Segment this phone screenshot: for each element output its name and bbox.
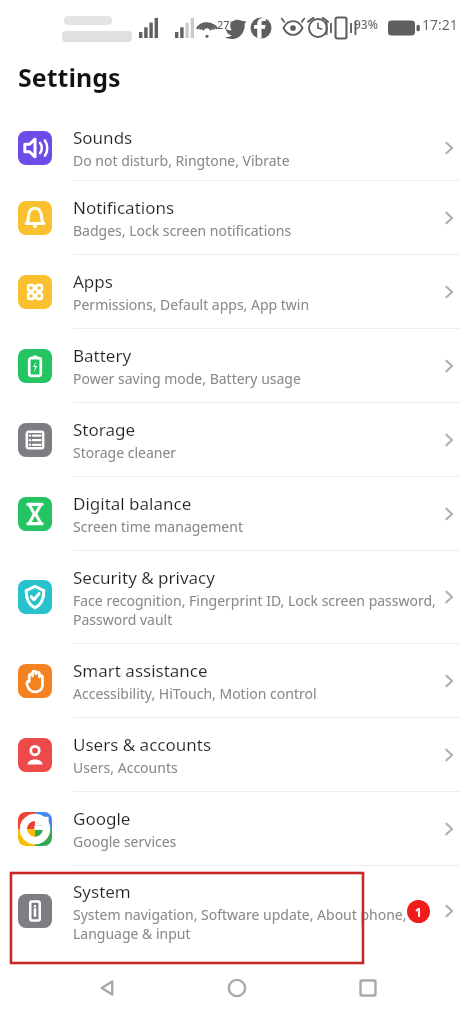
staticText: Do not disturb, Ringtone, Vibrate bbox=[73, 151, 290, 170]
staticText: 27° bbox=[217, 17, 235, 32]
staticText: Storage cleaner bbox=[73, 443, 177, 462]
button[interactable]: Digital balance bbox=[0, 477, 474, 550]
staticText: Screen time management bbox=[73, 517, 243, 536]
button[interactable]: Home bbox=[213, 964, 261, 1012]
staticText: Users & accounts bbox=[73, 733, 212, 756]
staticText: System navigation, Software update, Abou… bbox=[73, 905, 407, 943]
button[interactable]: Apps bbox=[0, 255, 474, 328]
button[interactable]: Users & accounts bbox=[0, 718, 474, 791]
staticText: Settings bbox=[18, 60, 121, 94]
button[interactable]: Recents bbox=[344, 964, 392, 1012]
button[interactable]: Google bbox=[0, 792, 474, 865]
staticText: 93% bbox=[354, 16, 378, 32]
staticText: Notifications bbox=[73, 196, 175, 219]
staticText: System bbox=[73, 880, 131, 903]
button[interactable]: Notifications bbox=[0, 181, 474, 254]
staticText: Google bbox=[73, 807, 131, 830]
button[interactable]: Smart assistance bbox=[0, 644, 474, 717]
staticText: Accessibility, HiTouch, Motion control bbox=[73, 684, 317, 703]
staticText: Battery bbox=[73, 344, 132, 367]
button[interactable]: Battery bbox=[0, 329, 474, 402]
staticText: Digital balance bbox=[73, 492, 192, 515]
staticText: 17:21 bbox=[422, 15, 458, 34]
staticText: 1 bbox=[415, 904, 422, 920]
button[interactable]: System bbox=[0, 866, 474, 956]
staticText: Apps bbox=[73, 270, 113, 293]
button[interactable]: Security & privacy bbox=[0, 551, 474, 643]
staticText: Sounds bbox=[73, 126, 133, 149]
button[interactable]: Sounds bbox=[0, 116, 474, 180]
staticText: Users, Accounts bbox=[73, 758, 178, 777]
staticText: Smart assistance bbox=[73, 659, 208, 682]
staticText: Face recognition, Fingerprint ID, Lock s… bbox=[73, 591, 438, 629]
button[interactable]: Storage bbox=[0, 403, 474, 476]
staticText: Power saving mode, Battery usage bbox=[73, 369, 301, 388]
button[interactable]: Back bbox=[83, 964, 131, 1012]
staticText: Badges, Lock screen notifications bbox=[73, 221, 292, 240]
staticText: Permissions, Default apps, App twin bbox=[73, 295, 310, 314]
staticText: Storage bbox=[73, 418, 136, 441]
staticText: Security & privacy bbox=[73, 566, 215, 589]
staticText: Google services bbox=[73, 832, 177, 851]
